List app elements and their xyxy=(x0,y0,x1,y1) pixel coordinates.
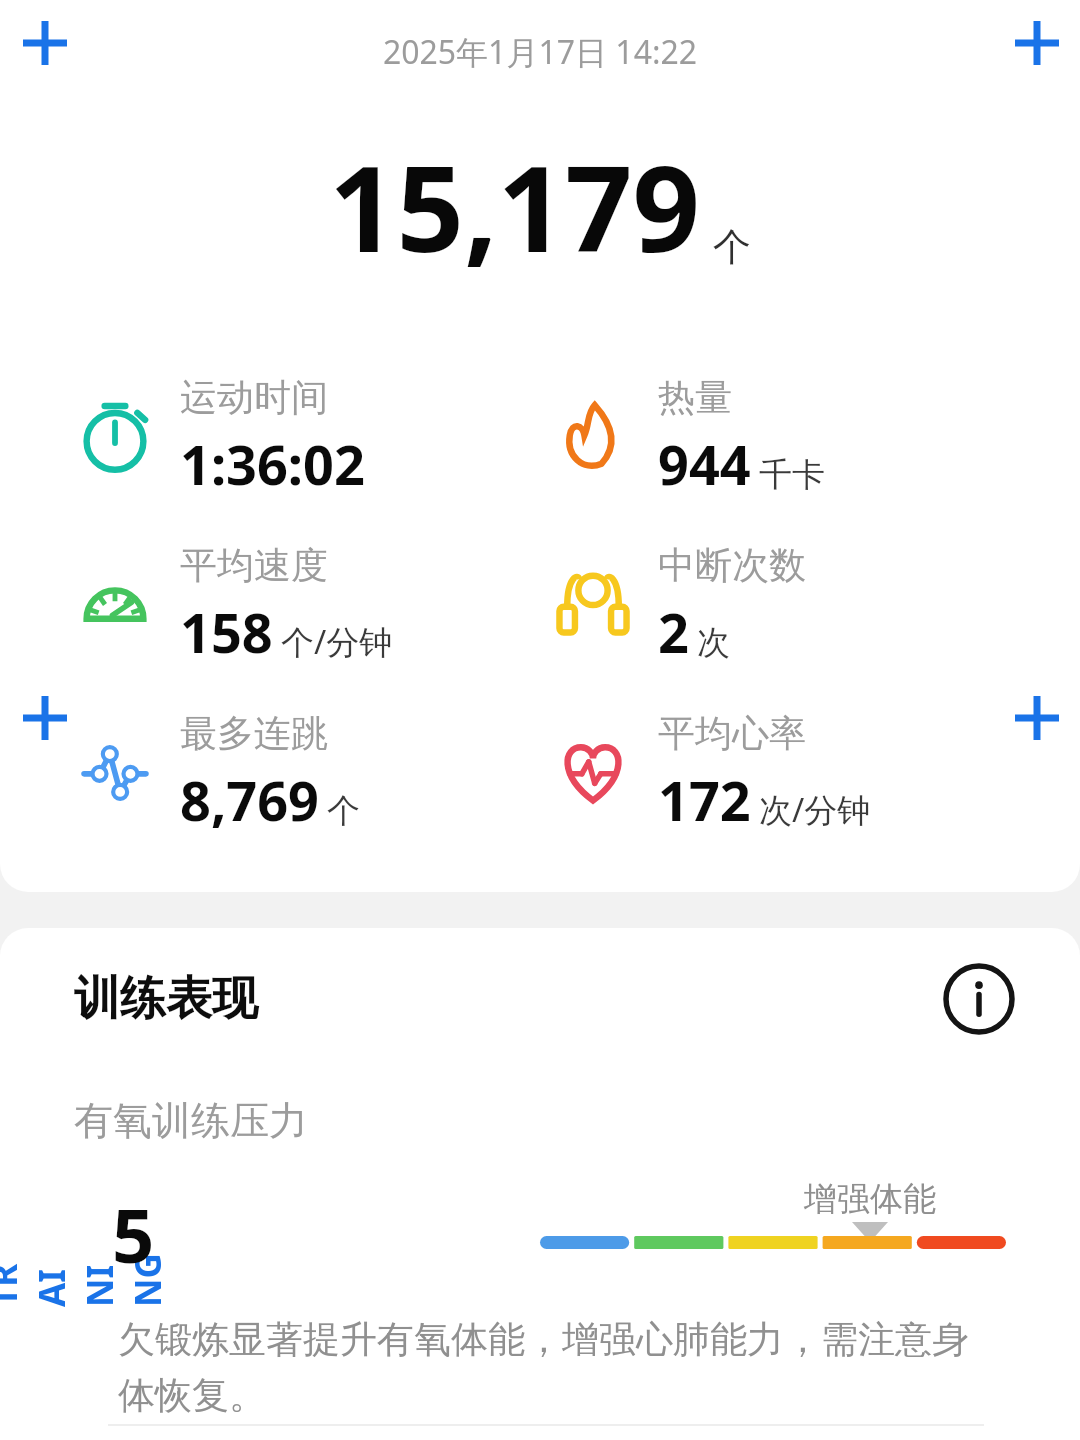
button[interactable]: 平均速度 xyxy=(72,530,542,680)
staticText: 8,769 xyxy=(180,763,319,837)
staticText: 训练表现 xyxy=(74,970,258,1028)
staticText: 欠锻炼显著提升有氧体能，增强心肺能力，需注意身体恢复。 xyxy=(118,1316,1004,1419)
staticText: 个 xyxy=(327,790,360,832)
staticText: 次/分钟 xyxy=(759,787,871,832)
staticText: 158 xyxy=(180,595,273,669)
staticText: 5 xyxy=(112,1184,155,1285)
staticText: 个/分钟 xyxy=(281,619,393,664)
staticText: 平均心率 xyxy=(658,710,806,757)
button[interactable]: 热量 xyxy=(550,362,1020,512)
staticText: 944 xyxy=(658,427,751,501)
staticText: 172 xyxy=(658,763,751,837)
button[interactable]: 平均心率 xyxy=(550,698,1020,848)
staticText: 千卡 xyxy=(759,454,825,496)
button[interactable]: 中断次数 xyxy=(550,530,1020,680)
staticText: 增强体能 xyxy=(804,1178,936,1220)
staticText: 最多连跳 xyxy=(180,710,328,757)
staticText: 运动时间 xyxy=(180,374,328,421)
button[interactable]: 运动时间 xyxy=(72,362,542,512)
staticText: 中断次数 xyxy=(658,542,806,589)
staticText: 次 xyxy=(697,622,730,664)
staticText: 15,179 xyxy=(329,126,701,287)
staticText: TRAINING xyxy=(0,1251,172,1307)
staticText: 平均速度 xyxy=(180,542,328,589)
staticText: 个 xyxy=(713,223,751,271)
staticText: 1:36:02 xyxy=(180,427,365,501)
staticText: 热量 xyxy=(658,374,732,421)
staticText: 有氧训练压力 xyxy=(74,1096,308,1145)
staticText: 2025年1月17日 14:22 xyxy=(0,30,1080,74)
staticText: 2 xyxy=(658,595,689,669)
button[interactable]: 最多连跳 xyxy=(72,698,542,848)
button[interactable]: Info xyxy=(936,956,1022,1042)
